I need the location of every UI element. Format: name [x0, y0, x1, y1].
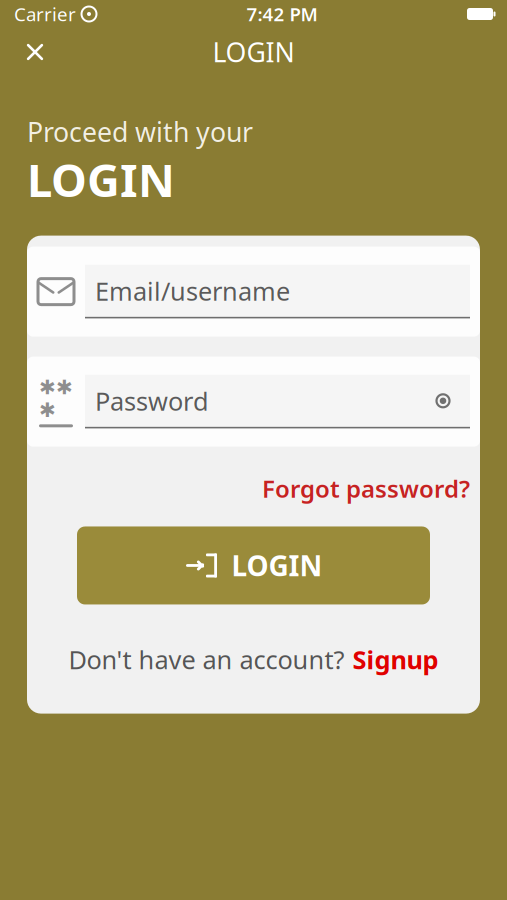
staticText: Signup	[352, 642, 438, 676]
button[interactable]: Show password	[426, 386, 460, 416]
staticText: 7:42 PM	[246, 2, 317, 26]
staticText: LOGIN	[27, 149, 175, 210]
button[interactable]: Don't have an account?	[27, 632, 480, 686]
staticText: LOGIN	[212, 34, 294, 70]
staticText: ✱✱✱	[39, 376, 73, 421]
staticText: Proceed with your	[27, 114, 253, 149]
staticText: Don't have an account?	[68, 642, 344, 676]
button[interactable]: Close	[12, 30, 58, 74]
staticText: Forgot password?	[262, 473, 470, 504]
staticText: LOGIN	[231, 547, 322, 584]
staticText: Carrier	[14, 2, 76, 26]
staticText: Email/username	[95, 274, 290, 308]
button[interactable]: LOGIN	[77, 526, 430, 604]
staticText: Password	[95, 384, 209, 418]
button[interactable]: Forgot password?	[262, 473, 470, 504]
